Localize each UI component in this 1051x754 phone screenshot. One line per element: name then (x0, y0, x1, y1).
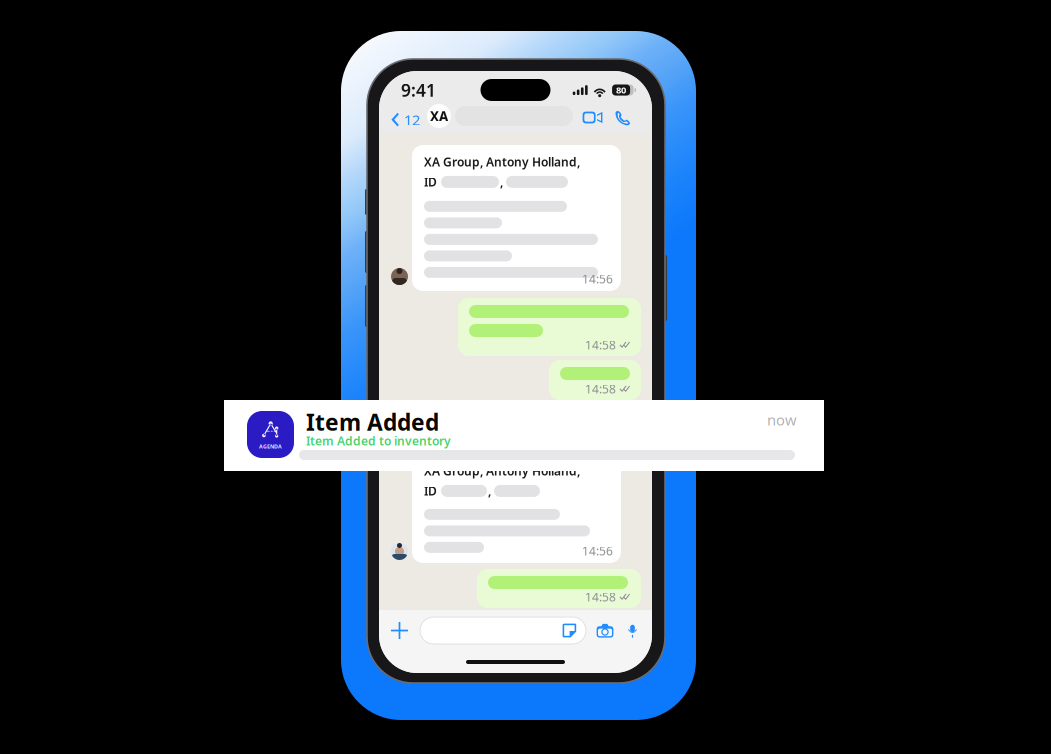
staticText: 14:58 (585, 337, 616, 353)
staticText: XA Group, Antony Holland, (424, 154, 580, 170)
staticText: Item Added (306, 407, 439, 437)
button[interactable]: Attach (385, 614, 414, 646)
staticText: 14:58 (585, 589, 616, 605)
button[interactable]: 12 (385, 105, 425, 134)
staticText: 14:58 (585, 381, 616, 397)
staticText: 9:41 (401, 78, 436, 101)
staticText: Item Added to inventory (306, 433, 451, 449)
staticText: , (500, 174, 503, 190)
button[interactable]: XA (427, 104, 573, 128)
staticText: 14:56 (582, 271, 613, 287)
button[interactable]: AGENDA (224, 400, 824, 471)
staticText: now (767, 410, 797, 429)
staticText: 12 (404, 110, 420, 129)
staticText: XA (430, 107, 448, 125)
button[interactable]: Video call (582, 110, 603, 125)
button[interactable] (420, 617, 586, 644)
staticText: 80 (616, 84, 626, 96)
staticText: 14:56 (582, 543, 613, 559)
staticText: ID (424, 483, 437, 499)
staticText: ID (424, 174, 437, 190)
button[interactable]: Voice message (622, 615, 643, 646)
staticText: , (488, 483, 491, 499)
button[interactable]: Voice call (615, 110, 631, 126)
staticText: AGENDA (259, 443, 282, 450)
button[interactable]: Camera (591, 615, 619, 646)
staticText: XA Group, Antony Holland, (424, 463, 580, 479)
